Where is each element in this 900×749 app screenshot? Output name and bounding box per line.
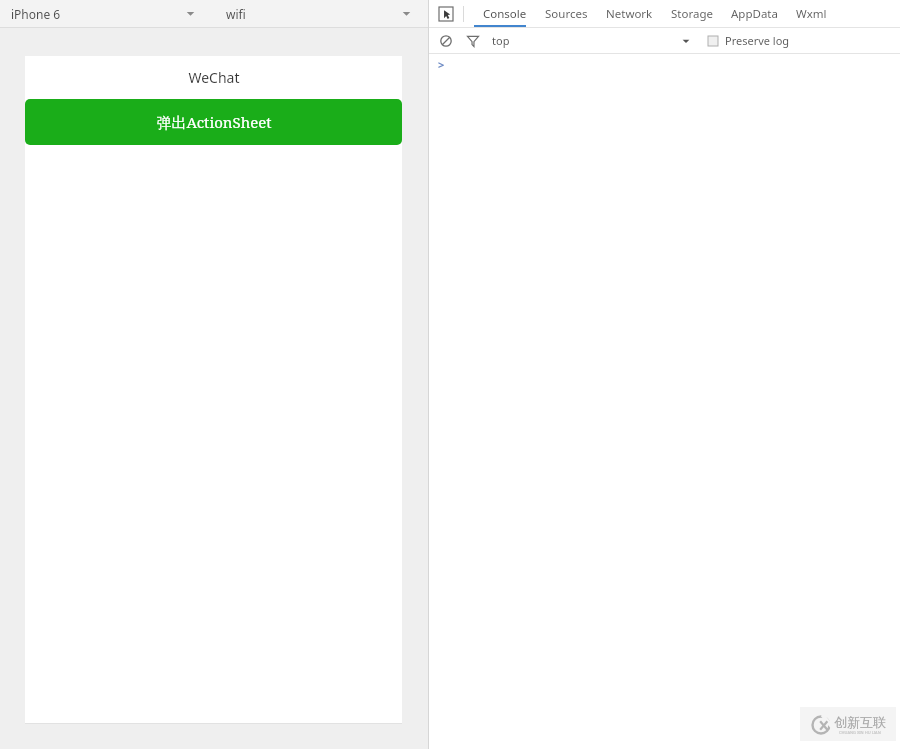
staticText: > <box>438 57 445 72</box>
staticText: top <box>492 33 510 48</box>
staticText: AppData <box>731 6 778 22</box>
button[interactable]: wifi <box>212 0 428 27</box>
staticText: Preserve log <box>725 33 790 48</box>
staticText: WeChat <box>188 68 240 87</box>
button[interactable]: Inspect element <box>437 5 455 23</box>
button[interactable]: Storage <box>662 0 722 27</box>
staticText: Storage <box>671 6 713 22</box>
button[interactable]: Wxml <box>787 0 836 27</box>
button[interactable]: Filter <box>464 32 482 50</box>
button[interactable]: AppData <box>722 0 787 27</box>
button[interactable]: top <box>492 28 510 53</box>
staticText: 创新互联 <box>834 714 886 730</box>
button[interactable]: 弹出ActionSheet <box>25 99 402 145</box>
button[interactable]: Network <box>597 0 662 27</box>
button[interactable]: Sources <box>536 0 597 27</box>
button[interactable]: Console <box>474 0 536 27</box>
staticText: Network <box>606 6 653 22</box>
staticText: 弹出ActionSheet <box>156 112 272 132</box>
button[interactable]: Clear console <box>437 32 455 50</box>
staticText: wifi <box>226 6 246 22</box>
staticText: CHUANG XIN HU LIAN <box>839 730 881 735</box>
staticText: Console <box>483 6 527 22</box>
button[interactable]: Preserve log <box>708 28 790 53</box>
button[interactable]: Context selector <box>678 33 694 49</box>
button[interactable]: iPhone 6 <box>0 0 212 27</box>
staticText: Wxml <box>796 6 827 22</box>
staticText: iPhone 6 <box>11 6 61 22</box>
staticText: Sources <box>545 6 588 22</box>
